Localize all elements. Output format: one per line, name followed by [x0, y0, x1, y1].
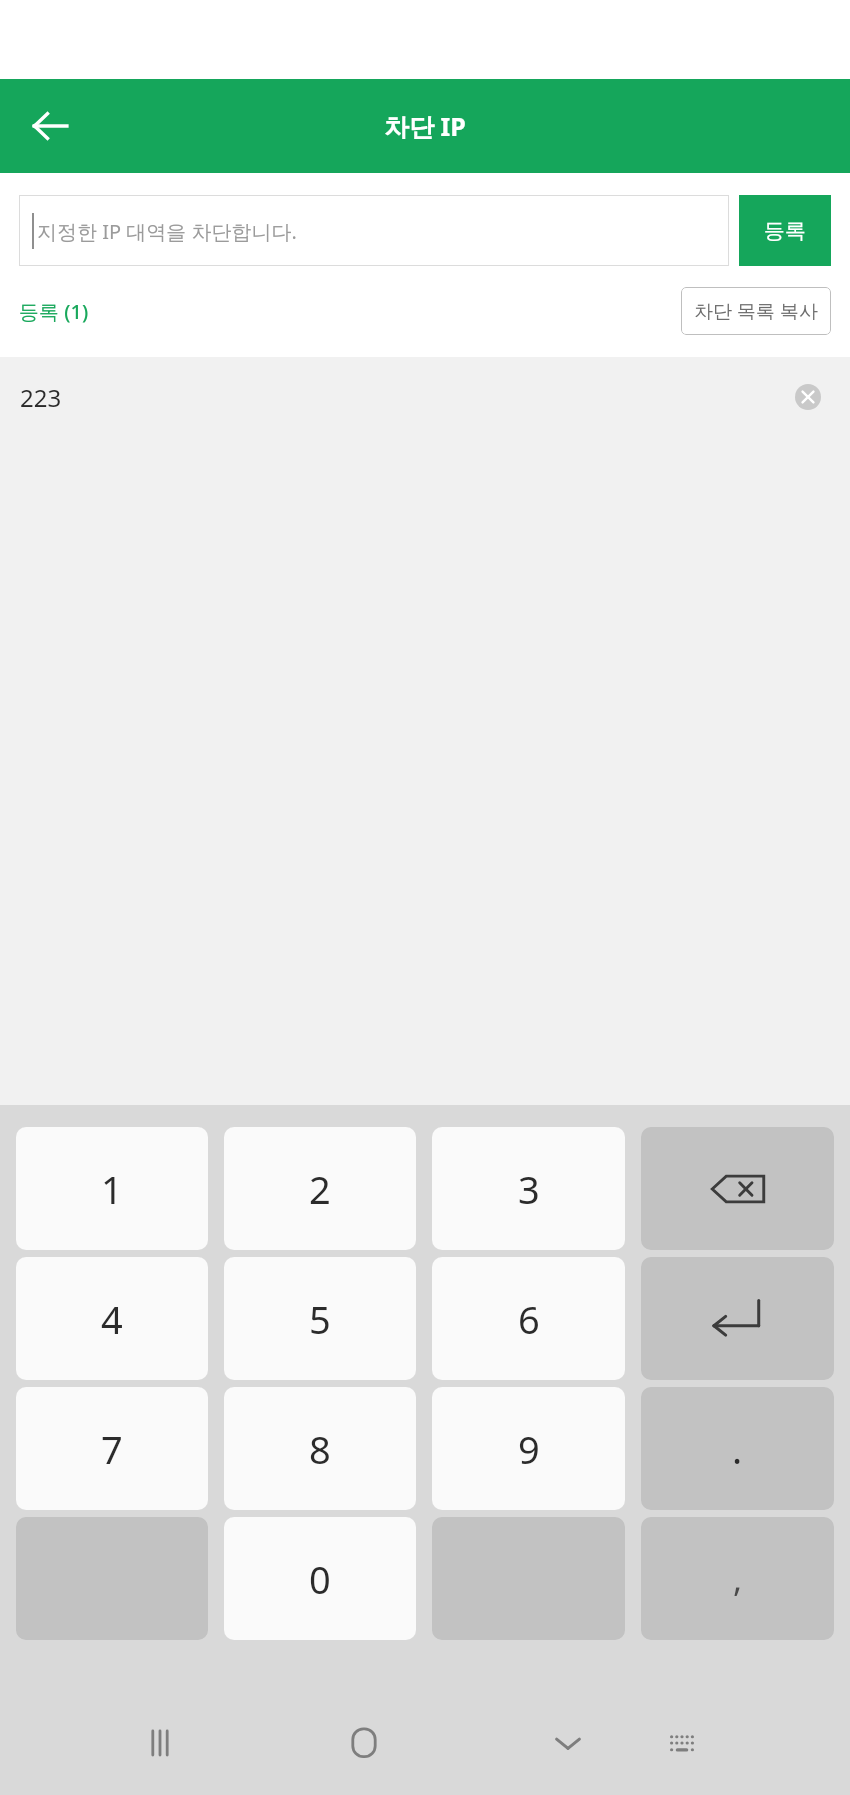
- button[interactable]: 2: [224, 1127, 416, 1250]
- staticText: 4: [101, 1293, 123, 1345]
- button[interactable]: Backspace: [641, 1127, 834, 1250]
- button[interactable]: 0: [224, 1517, 416, 1640]
- button[interactable]: 지정한 IP 대역을 차단합니다.: [19, 195, 729, 266]
- staticText: ,: [733, 1556, 743, 1602]
- button[interactable]: 3: [432, 1127, 625, 1250]
- staticText: 7: [101, 1423, 123, 1475]
- button[interactable]: Delete: [786, 375, 830, 419]
- button[interactable]: Hide keyboard: [518, 1693, 618, 1793]
- staticText: 6: [518, 1293, 540, 1345]
- staticText: 223: [20, 381, 62, 414]
- staticText: 5: [309, 1293, 331, 1345]
- button[interactable]: 223: [0, 357, 850, 437]
- button[interactable]: Home: [314, 1693, 414, 1793]
- staticText: 등록 (1): [19, 298, 89, 325]
- button[interactable]: 6: [432, 1257, 625, 1380]
- button[interactable]: 9: [432, 1387, 625, 1510]
- button[interactable]: 4: [16, 1257, 208, 1380]
- button[interactable]: ,: [641, 1517, 834, 1640]
- button[interactable]: 1: [16, 1127, 208, 1250]
- staticText: 등록: [764, 218, 806, 244]
- staticText: 3: [518, 1163, 540, 1215]
- staticText: .: [732, 1423, 743, 1475]
- button[interactable]: 등록: [739, 195, 831, 266]
- staticText: 차단 목록 복사: [694, 298, 818, 324]
- staticText: 0: [309, 1553, 331, 1605]
- button[interactable]: Recents: [110, 1693, 210, 1793]
- button[interactable]: 5: [224, 1257, 416, 1380]
- staticText: 차단 IP: [384, 109, 466, 143]
- button[interactable]: 차단 목록 복사: [681, 287, 831, 335]
- button[interactable]: Enter: [641, 1257, 834, 1380]
- staticText: 9: [518, 1423, 540, 1475]
- staticText: 8: [309, 1423, 331, 1475]
- button[interactable]: .: [641, 1387, 834, 1510]
- staticText: 1: [101, 1163, 123, 1215]
- button[interactable]: 등록 (1): [19, 298, 89, 325]
- staticText: 2: [309, 1163, 331, 1215]
- button[interactable]: 8: [224, 1387, 416, 1510]
- button[interactable]: 7: [16, 1387, 208, 1510]
- button[interactable]: Back: [18, 94, 82, 158]
- staticText: 지정한 IP 대역을 차단합니다.: [37, 218, 297, 245]
- button[interactable]: Change keyboard: [632, 1693, 732, 1793]
